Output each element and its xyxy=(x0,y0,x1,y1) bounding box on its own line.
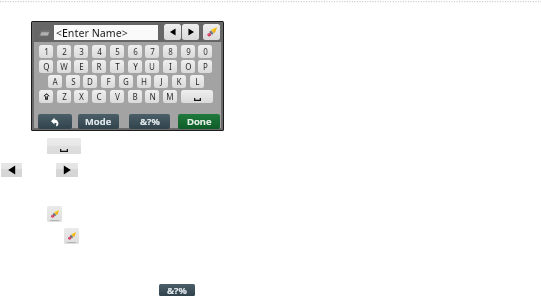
button[interactable]: F xyxy=(101,75,115,88)
staticText: 2 xyxy=(62,46,67,57)
staticText: 8 xyxy=(168,46,173,57)
staticText: Done xyxy=(187,115,212,128)
button[interactable]: Mode xyxy=(78,114,119,129)
button[interactable]: B xyxy=(128,90,142,103)
staticText: &?% xyxy=(140,115,160,128)
button[interactable]: &?% xyxy=(129,114,170,129)
button[interactable]: Space xyxy=(47,138,81,154)
staticText: 7 xyxy=(150,46,155,57)
button[interactable]: E xyxy=(74,60,88,73)
staticText: T xyxy=(115,61,120,72)
button[interactable]: M xyxy=(163,90,177,103)
button[interactable]: N xyxy=(145,90,159,103)
staticText: J xyxy=(160,76,163,87)
staticText: L xyxy=(195,76,200,87)
button[interactable]: <Enter Name> xyxy=(54,25,158,40)
button[interactable]: Edit xyxy=(203,24,220,40)
button[interactable]: Next xyxy=(56,163,78,177)
button[interactable]: Next xyxy=(182,24,199,40)
button[interactable]: 7 xyxy=(145,45,159,58)
button[interactable]: W xyxy=(57,60,71,73)
staticText: Mode xyxy=(85,115,112,128)
button[interactable]: H xyxy=(137,75,151,88)
staticText: 5 xyxy=(115,46,120,57)
button[interactable]: 4 xyxy=(92,45,106,58)
staticText: V xyxy=(115,91,120,102)
staticText: M xyxy=(166,91,174,102)
staticText: &?% xyxy=(167,284,187,296)
staticText: B xyxy=(132,91,138,102)
button[interactable]: X xyxy=(74,90,88,103)
staticText: <Enter Name> xyxy=(56,26,128,40)
button[interactable]: Q xyxy=(39,60,53,73)
staticText: G xyxy=(123,76,129,87)
button[interactable]: Previous xyxy=(164,24,181,40)
staticText: R xyxy=(96,61,102,72)
staticText: A xyxy=(52,76,58,87)
staticText: D xyxy=(87,76,93,87)
staticText: H xyxy=(141,76,147,87)
button[interactable]: 0 xyxy=(198,45,212,58)
staticText: W xyxy=(60,61,68,72)
button[interactable]: Back xyxy=(38,114,72,129)
button[interactable]: Shift xyxy=(39,90,53,103)
button[interactable]: O xyxy=(181,60,195,73)
button[interactable]: D xyxy=(83,75,97,88)
button[interactable]: G xyxy=(119,75,133,88)
button[interactable]: R xyxy=(92,60,106,73)
button[interactable]: S xyxy=(66,75,80,88)
button[interactable]: Edit xyxy=(47,206,62,222)
staticText: X xyxy=(79,91,84,102)
staticText: 9 xyxy=(186,46,191,57)
button[interactable]: T xyxy=(110,60,124,73)
button[interactable]: Edit xyxy=(64,228,79,244)
button[interactable]: 5 xyxy=(110,45,124,58)
staticText: Y xyxy=(133,61,138,72)
button[interactable]: 1 xyxy=(39,45,53,58)
button[interactable]: L xyxy=(190,75,204,88)
button[interactable]: P xyxy=(198,60,212,73)
button[interactable]: 8 xyxy=(163,45,177,58)
staticText: I xyxy=(169,61,172,72)
button[interactable]: 6 xyxy=(128,45,142,58)
staticText: U xyxy=(149,61,155,72)
button[interactable]: 9 xyxy=(181,45,195,58)
staticText: 4 xyxy=(97,46,102,57)
staticText: 6 xyxy=(133,46,138,57)
staticText: E xyxy=(79,61,84,72)
staticText: 1 xyxy=(44,46,49,57)
button[interactable]: I xyxy=(163,60,177,73)
staticText: F xyxy=(106,76,111,87)
button[interactable]: Y xyxy=(128,60,142,73)
button[interactable]: Previous xyxy=(1,163,22,177)
staticText: O xyxy=(185,61,192,72)
button[interactable]: A xyxy=(48,75,62,88)
staticText: 3 xyxy=(79,46,84,57)
staticText: 0 xyxy=(203,46,208,57)
staticText: Z xyxy=(62,91,67,102)
button[interactable]: C xyxy=(92,90,106,103)
staticText: P xyxy=(203,61,208,72)
staticText: K xyxy=(176,76,182,87)
button[interactable]: 3 xyxy=(74,45,88,58)
button[interactable]: J xyxy=(154,75,168,88)
button[interactable]: U xyxy=(145,60,159,73)
button[interactable]: 2 xyxy=(57,45,71,58)
staticText: Q xyxy=(43,61,50,72)
button[interactable]: Space xyxy=(181,90,213,103)
button[interactable]: Z xyxy=(57,90,71,103)
button[interactable]: V xyxy=(110,90,124,103)
staticText: C xyxy=(96,91,102,102)
button[interactable]: K xyxy=(172,75,186,88)
button[interactable]: Done xyxy=(178,114,220,129)
staticText: N xyxy=(149,91,156,102)
staticText: S xyxy=(71,76,76,87)
button[interactable]: &?% xyxy=(159,284,195,296)
